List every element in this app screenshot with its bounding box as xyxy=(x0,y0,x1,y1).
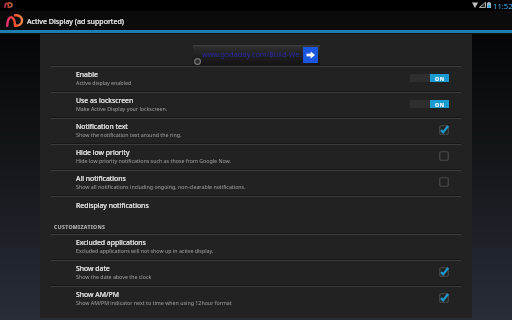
button[interactable]: Use as lockscreen xyxy=(40,93,472,119)
staticText: Show the date above the clock xyxy=(76,273,152,280)
button[interactable]: Excluded applications xyxy=(40,235,472,261)
staticText: Use as lockscreen xyxy=(76,96,134,105)
button[interactable]: Enable xyxy=(40,67,472,93)
button[interactable]: Unchecked xyxy=(437,175,451,189)
staticText: 11:52 xyxy=(493,1,512,11)
button[interactable]: Checked xyxy=(437,265,451,279)
staticText: Hide low priority notifications such as … xyxy=(76,157,231,164)
button[interactable]: Toggle on xyxy=(410,100,449,108)
staticText: www.godaddy.com/Build-We… xyxy=(202,49,305,59)
staticText: Notification text xyxy=(76,122,128,131)
button[interactable]: Checked xyxy=(437,291,451,305)
staticText: Excluded applications will not show up i… xyxy=(76,247,214,254)
staticText: Show all notifications including ongoing… xyxy=(76,183,246,190)
staticText: Show the notification text around the ri… xyxy=(76,131,182,138)
staticText: Enable xyxy=(76,70,98,79)
staticText: Excluded applications xyxy=(76,238,146,247)
staticText: Active display enabled xyxy=(76,79,132,86)
button[interactable]: Active Display (ad supported) xyxy=(0,11,124,30)
staticText: Hide low priority xyxy=(76,148,130,157)
button[interactable]: Show date xyxy=(40,261,472,287)
staticText: CUSTOMIZATIONS xyxy=(54,223,106,230)
button[interactable]: Checked xyxy=(437,123,451,137)
staticText: ON xyxy=(435,101,445,108)
staticText: Show AM/PM xyxy=(76,290,119,299)
staticText: All notifications xyxy=(76,174,126,183)
button[interactable]: Hide low priority xyxy=(40,145,472,171)
button[interactable]: Redisplay notifications xyxy=(40,197,472,222)
staticText: Active Display (ad supported) xyxy=(27,16,124,26)
button[interactable]: Show AM/PM xyxy=(40,287,472,313)
staticText: Show date xyxy=(76,264,110,273)
staticText: Show AM/PM indicator next to time when u… xyxy=(76,299,232,306)
staticText: Make Active Display your lockscreen. xyxy=(76,105,168,112)
button[interactable]: Unchecked xyxy=(437,149,451,163)
staticText: Redisplay notifications xyxy=(76,201,149,210)
button[interactable]: Advertisement xyxy=(193,45,320,66)
button[interactable]: Notification text xyxy=(40,119,472,145)
staticText: ON xyxy=(435,75,445,82)
button[interactable]: All notifications xyxy=(40,171,472,197)
button[interactable]: Toggle on xyxy=(410,74,449,82)
